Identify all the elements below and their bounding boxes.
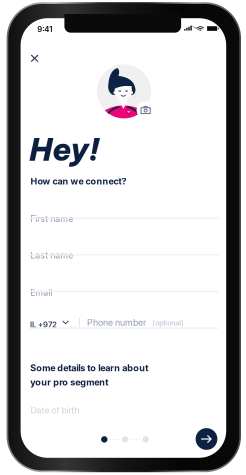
button[interactable]: Last name bbox=[30, 242, 219, 268]
staticText: How can we connect? bbox=[30, 176, 126, 187]
button[interactable]: Change profile photo bbox=[137, 101, 155, 119]
staticText: First name bbox=[30, 213, 73, 224]
staticText: Email bbox=[30, 287, 52, 298]
staticText: Some details to learn about bbox=[30, 363, 148, 373]
staticText: Date of birth bbox=[30, 405, 79, 416]
button[interactable]: Email bbox=[30, 279, 219, 305]
button[interactable]: First name bbox=[30, 206, 219, 232]
staticText: IL +972 bbox=[30, 320, 57, 329]
staticText: your pro segment bbox=[30, 377, 108, 388]
staticText: Hey! bbox=[29, 130, 98, 169]
button[interactable]: Close bbox=[28, 51, 42, 65]
button[interactable]: Country code IL +972 bbox=[30, 319, 72, 331]
button[interactable]: Next bbox=[196, 428, 217, 450]
staticText: Last name bbox=[30, 250, 73, 261]
staticText: Phone number bbox=[87, 317, 146, 328]
staticText: 9:41 bbox=[37, 24, 52, 34]
staticText: (optional) bbox=[152, 318, 184, 327]
